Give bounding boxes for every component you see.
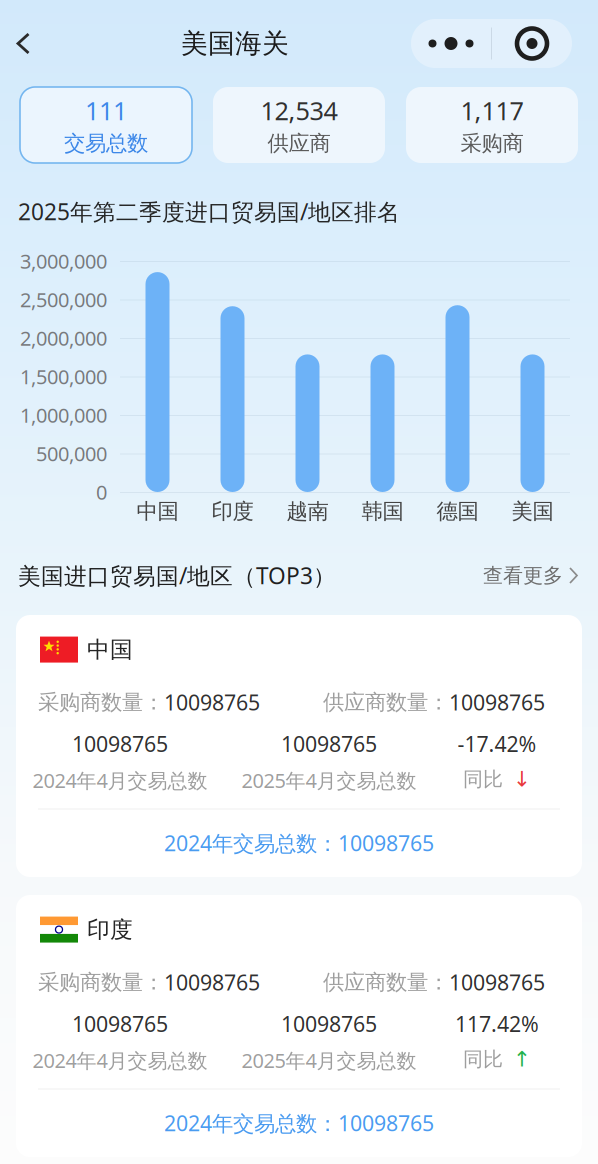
staticText: 2024年4月交易总数 xyxy=(32,767,207,793)
staticText: ↓ xyxy=(513,767,531,791)
staticText: 2025年第二季度进口贸易国/地区排名 xyxy=(18,196,400,226)
staticText: 美国海关 xyxy=(181,27,289,60)
staticText: 2024年4月交易总数 xyxy=(32,1047,207,1073)
staticText: 供应商数量： xyxy=(323,969,449,995)
staticText: 供应商 xyxy=(267,130,330,156)
staticText: 1,000,000 xyxy=(20,402,107,428)
staticText: 10098765 xyxy=(281,730,377,758)
staticText: 采购商数量： xyxy=(38,689,164,715)
staticText: ↑ xyxy=(513,1047,531,1071)
button[interactable]: 2024年交易总数：10098765 xyxy=(16,1089,582,1156)
staticText: 2025年4月交易总数 xyxy=(241,1047,416,1073)
staticText: 2025年4月交易总数 xyxy=(241,767,416,793)
button[interactable]: 查看更多 xyxy=(483,563,580,588)
staticText: 供应商数量： xyxy=(323,689,449,715)
staticText: 10098765 xyxy=(449,968,545,996)
staticText: 同比 xyxy=(463,1047,503,1071)
staticText: 美国 xyxy=(511,498,553,525)
staticText: 中国 xyxy=(87,636,133,663)
staticText: 2024年交易总数：10098765 xyxy=(164,1109,434,1137)
staticText: 3,000,000 xyxy=(20,248,107,274)
staticText: 10098765 xyxy=(164,688,260,716)
staticText: 印度 xyxy=(211,498,253,525)
staticText: 1,117 xyxy=(460,94,523,127)
staticText: 0 xyxy=(96,479,107,505)
staticText: 10098765 xyxy=(72,730,168,758)
staticText: 德国 xyxy=(436,498,478,525)
staticText: 交易总数 xyxy=(64,130,148,156)
staticText: 采购商 xyxy=(460,130,523,156)
staticText: 2024年交易总数：10098765 xyxy=(164,829,434,857)
staticText: 117.42% xyxy=(455,1010,539,1038)
staticText: 查看更多 xyxy=(483,563,563,588)
staticText: 采购商数量： xyxy=(38,969,164,995)
staticText: 10098765 xyxy=(449,688,545,716)
staticText: 111 xyxy=(85,94,127,127)
staticText: 中国 xyxy=(136,498,178,525)
staticText: 10098765 xyxy=(164,968,260,996)
staticText: 2,500,000 xyxy=(20,286,107,313)
staticText: 美国进口贸易国/地区（TOP3） xyxy=(18,560,336,590)
button[interactable]: 12,534 xyxy=(213,87,385,163)
button[interactable]: Back xyxy=(0,0,59,87)
staticText: 10098765 xyxy=(72,1010,168,1038)
staticText: -17.42% xyxy=(457,730,536,758)
button[interactable]: More options xyxy=(411,0,598,87)
button[interactable]: 2024年交易总数：10098765 xyxy=(16,809,582,876)
button[interactable]: 111 xyxy=(20,87,192,163)
staticText: 12,534 xyxy=(260,94,337,127)
staticText: 印度 xyxy=(87,916,133,943)
staticText: 1,500,000 xyxy=(20,363,107,390)
staticText: 同比 xyxy=(463,767,503,791)
staticText: 2,000,000 xyxy=(20,325,107,351)
staticText: 500,000 xyxy=(36,440,107,467)
staticText: 10098765 xyxy=(281,1010,377,1038)
staticText: 越南 xyxy=(286,498,328,525)
staticText: 韩国 xyxy=(361,498,403,525)
button[interactable]: 1,117 xyxy=(406,87,578,163)
